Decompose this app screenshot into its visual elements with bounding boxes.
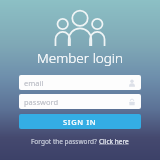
other: Members [51, 9, 109, 46]
staticText: email [24, 78, 128, 88]
button[interactable]: SIGN IN [19, 114, 141, 129]
other: Username [128, 79, 136, 87]
button[interactable]: password [19, 94, 141, 109]
other: Password [128, 98, 136, 106]
staticText: Forgot the password? [31, 137, 99, 146]
staticText: Click here [99, 137, 129, 146]
button[interactable]: Click here [99, 137, 129, 146]
staticText: password [24, 97, 128, 107]
button[interactable]: email [19, 75, 141, 90]
staticText: SIGN IN [63, 117, 97, 127]
staticText: Member login [37, 49, 123, 67]
